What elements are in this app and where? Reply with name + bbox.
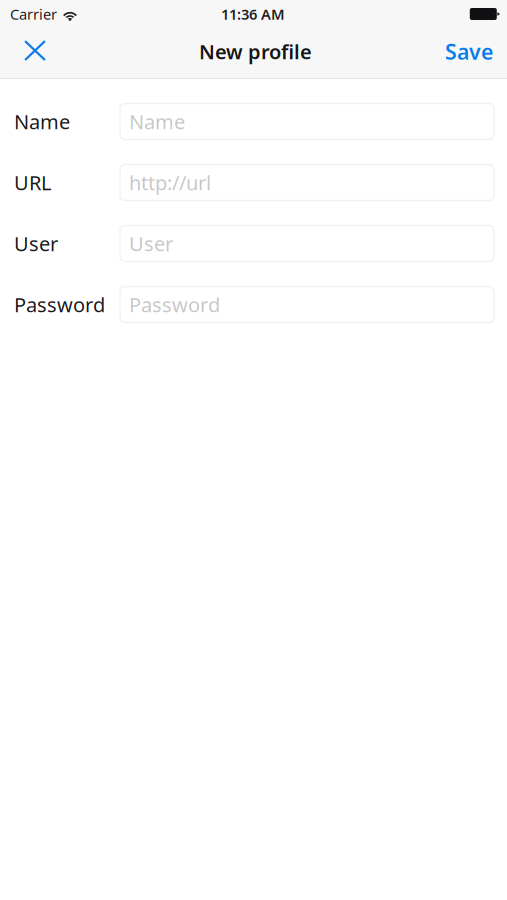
- button[interactable]: User: [120, 225, 494, 261]
- staticText: Name: [129, 108, 185, 135]
- button[interactable]: Save: [431, 29, 493, 76]
- staticText: Password: [14, 291, 105, 318]
- staticText: New profile: [199, 38, 312, 65]
- staticText: http://url: [129, 169, 211, 196]
- staticText: User: [14, 230, 58, 257]
- staticText: Carrier: [10, 4, 57, 24]
- staticText: URL: [14, 169, 51, 196]
- button[interactable]: Close: [13, 28, 57, 77]
- staticText: Password: [129, 291, 220, 318]
- button[interactable]: Password: [120, 286, 494, 322]
- button[interactable]: URL: [120, 164, 494, 200]
- staticText: Save: [445, 37, 493, 66]
- staticText: Name: [14, 108, 70, 135]
- staticText: 11:36 AM: [221, 4, 285, 24]
- staticText: User: [129, 230, 173, 257]
- button[interactable]: Name: [120, 103, 494, 139]
